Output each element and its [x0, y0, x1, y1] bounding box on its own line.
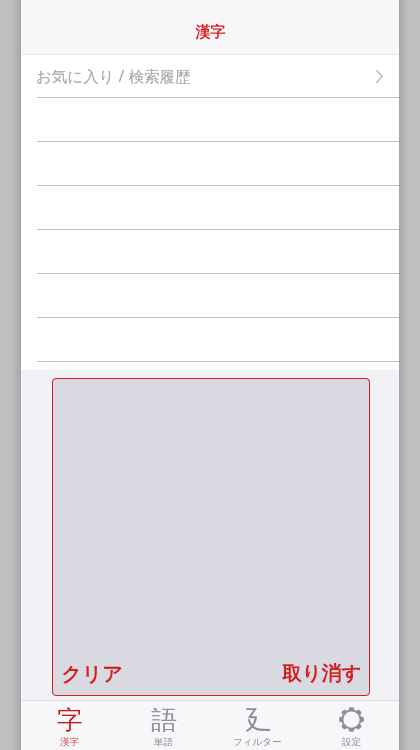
button[interactable]: クリア: [52, 662, 123, 696]
other: Open: [376, 70, 383, 83]
staticText: 廴: [246, 704, 272, 734]
button[interactable]: [21, 274, 399, 318]
staticText: 漢字: [60, 736, 79, 748]
button[interactable]: [21, 142, 399, 186]
button[interactable]: 廴: [209, 701, 304, 750]
staticText: 語: [151, 704, 177, 734]
staticText: 設定: [342, 736, 361, 748]
staticText: お気に入り / 検索履歴: [36, 65, 191, 86]
button[interactable]: [21, 318, 399, 362]
button[interactable]: 設定 Settings: [304, 701, 399, 750]
staticText: 単語: [154, 736, 173, 748]
button[interactable]: [21, 186, 399, 230]
button[interactable]: 取り消す: [282, 661, 370, 696]
button[interactable]: [21, 98, 399, 142]
button[interactable]: 語: [115, 701, 209, 750]
staticText: フィルター: [233, 736, 282, 748]
button[interactable]: お気に入り / 検索履歴: [21, 55, 399, 98]
button[interactable]: [21, 230, 399, 274]
staticText: 字: [57, 704, 83, 734]
button[interactable]: 字: [21, 701, 115, 750]
staticText: 漢字: [195, 23, 225, 42]
